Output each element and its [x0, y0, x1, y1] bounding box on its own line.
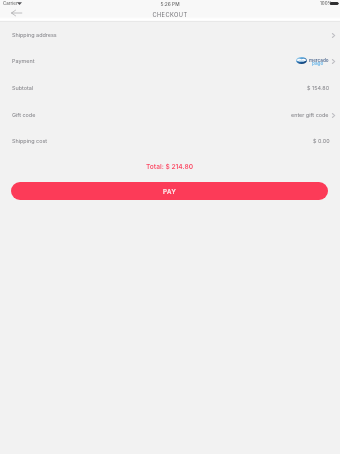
button[interactable]: Subtotal — [0, 75, 340, 102]
staticText: $ 154.80 — [307, 85, 330, 92]
button[interactable]: PAY — [11, 182, 328, 200]
button[interactable]: Shipping address — [0, 22, 340, 49]
staticText: Total: $ 214.80 — [146, 163, 194, 171]
staticText: mercado — [309, 58, 329, 64]
staticText: enter gift code — [291, 112, 329, 119]
staticText: Gift code — [12, 112, 36, 119]
staticText: Shipping address — [12, 32, 57, 39]
staticText: 100% — [320, 1, 332, 6]
staticText: 5:26 PM — [0, 1, 340, 7]
staticText: Carrier — [3, 1, 18, 6]
button[interactable]: Shipping cost — [0, 128, 340, 155]
button[interactable]: Payment — [0, 48, 340, 75]
staticText: pago — [312, 61, 324, 67]
button[interactable]: Back — [5, 8, 29, 21]
staticText: PAY — [163, 188, 177, 196]
staticText: CHECKOUT — [0, 11, 340, 18]
staticText: Shipping cost — [12, 138, 48, 145]
staticText: Subtotal — [12, 85, 34, 92]
staticText: Payment — [12, 58, 35, 65]
button[interactable]: Gift code — [0, 102, 340, 129]
staticText: $ 0.00 — [313, 138, 330, 145]
